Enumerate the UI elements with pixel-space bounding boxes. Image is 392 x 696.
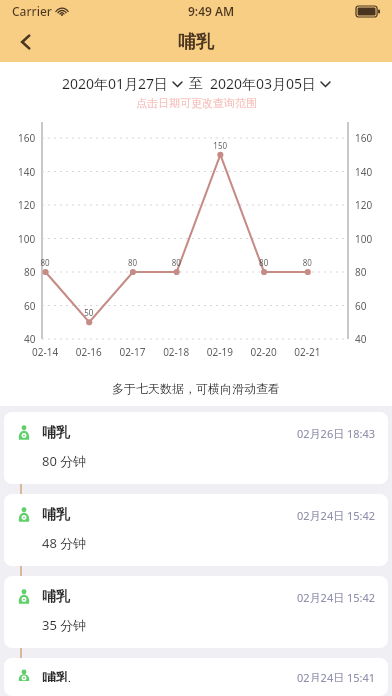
staticText: 哺乳 [42,506,70,524]
button[interactable]: 2020年01月27日 [62,74,182,93]
staticText: 哺乳 [42,670,70,682]
button[interactable]: 哺乳 [4,412,388,484]
staticText: 至 [189,75,203,93]
button[interactable]: 哺乳 [4,494,388,566]
staticText: 2020年01月27日 [62,74,169,93]
button[interactable]: Back [6,22,46,62]
staticText: 哺乳 [42,424,70,442]
staticText: 35 分钟 [42,616,87,634]
staticText: 02月26日 18:43 [297,426,376,441]
staticText: 点击日期可更改查询范围 [136,96,257,110]
staticText: 02月24日 15:42 [297,590,376,605]
staticText: 9:49 AM [188,3,235,19]
staticText: 哺乳 [42,588,70,606]
staticText: 哺乳 [178,31,214,54]
button[interactable]: 2020年03月05日 [210,74,330,93]
staticText: Carrier [12,3,52,19]
staticText: 2020年03月05日 [210,74,317,93]
staticText: 02月24日 15:42 [297,508,376,523]
staticText: 80 分钟 [42,452,87,470]
staticText: 02月24日 15:41 [297,670,376,682]
button[interactable]: 哺乳 [4,658,388,696]
staticText: 多于七天数据，可横向滑动查看 [0,381,392,396]
staticText: 48 分钟 [42,534,87,552]
button[interactable]: 哺乳 [4,576,388,648]
